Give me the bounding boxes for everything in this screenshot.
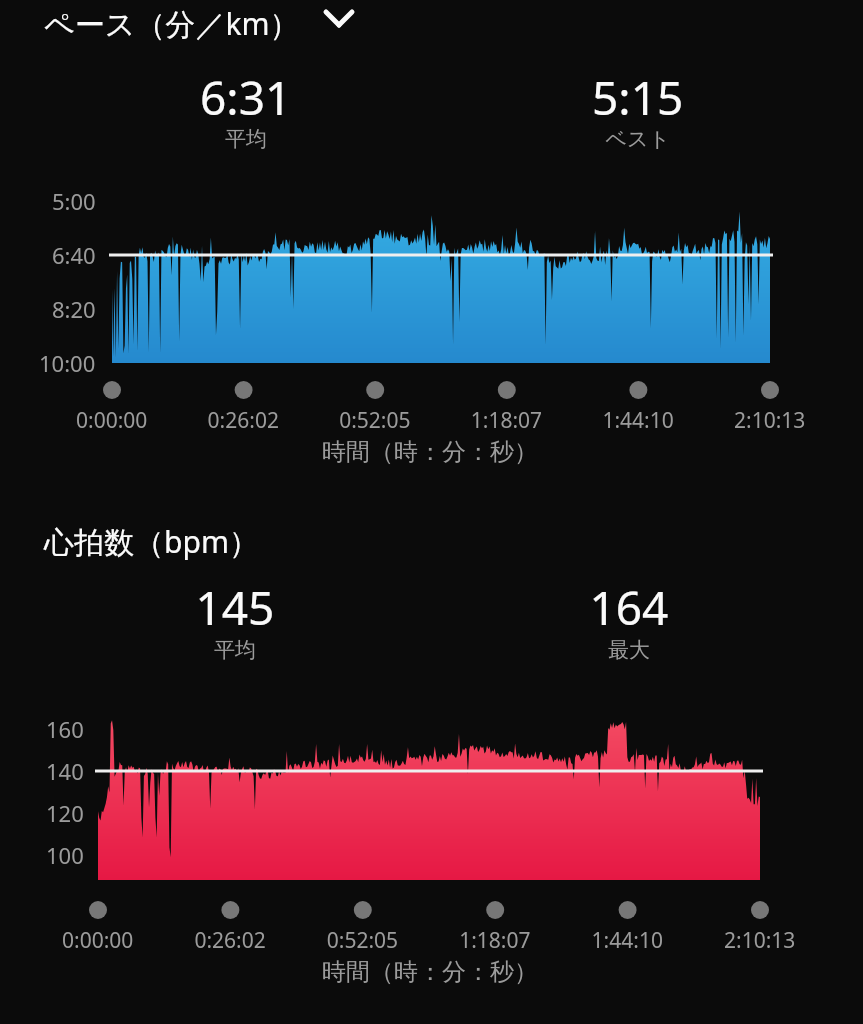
- button[interactable]: ペース（分／km） 指標を変更: [36, 0, 366, 44]
